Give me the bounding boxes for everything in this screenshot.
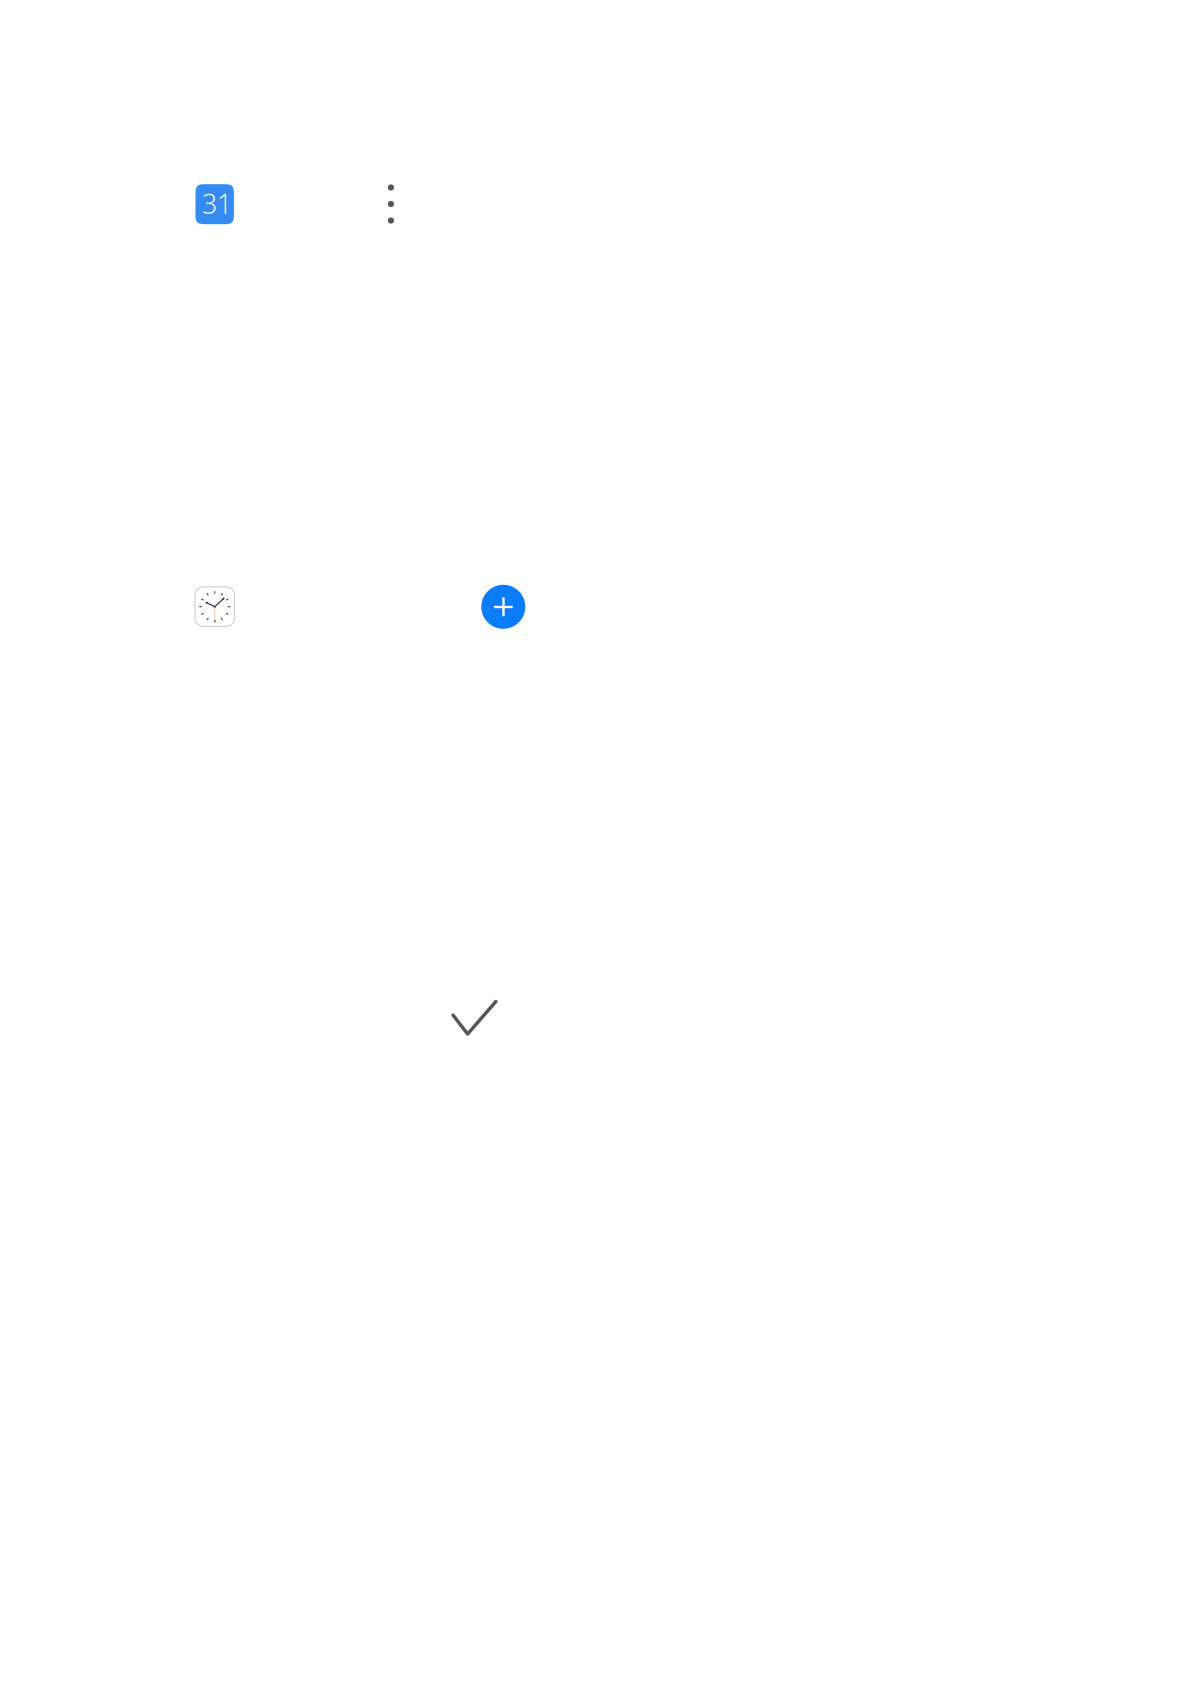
button[interactable]: Clock: [194, 586, 235, 627]
button[interactable]: Calendar: [195, 184, 234, 224]
button[interactable]: More options: [378, 182, 404, 226]
button[interactable]: Done: [451, 1000, 497, 1036]
staticText: 31: [202, 186, 232, 221]
button[interactable]: Add: [481, 585, 525, 629]
